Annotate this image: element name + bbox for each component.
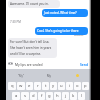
button[interactable]: For sure! But don't tell Lisa. She hasn'… [8, 38, 57, 58]
staticText: o [76, 83, 79, 89]
button[interactable]: q [8, 82, 16, 90]
button[interactable]: Cool. She's going to be there [35, 27, 88, 35]
button[interactable]: o [74, 82, 81, 90]
button[interactable]: l [78, 92, 85, 100]
button[interactable]: Just noted. What time? [42, 9, 88, 17]
button[interactable]: g [46, 92, 53, 100]
button[interactable]: e [26, 82, 33, 90]
button[interactable]: h [54, 92, 61, 100]
button[interactable]: k [70, 92, 77, 100]
staticText: g [48, 93, 51, 99]
button[interactable]: u [58, 82, 65, 90]
staticText: “My” [18, 74, 24, 78]
staticText: Cool. She's going to be there [37, 29, 79, 33]
button[interactable] [63, 69, 91, 82]
staticText: 7:30 PM [10, 20, 21, 24]
button[interactable]: My [35, 69, 63, 82]
staticText: l [81, 93, 83, 99]
button[interactable]: Send [79, 62, 90, 66]
button[interactable]: “My” [6, 69, 35, 82]
staticText: y [52, 83, 55, 89]
staticText: s [24, 93, 27, 99]
button[interactable]: f [38, 92, 45, 100]
staticText: u [60, 83, 63, 89]
staticText: i [69, 83, 71, 89]
staticText: r [37, 83, 39, 89]
staticText: j [65, 93, 67, 99]
staticText: d [32, 93, 35, 99]
staticText: w [19, 83, 23, 89]
staticText: Send [80, 62, 89, 66]
staticText: e [28, 83, 31, 89]
staticText: For sure! But don't tell Lisa. She hasn'… [10, 40, 55, 56]
staticText: Awesome. I'll count you in. [10, 2, 49, 6]
button[interactable]: r [34, 82, 41, 90]
button[interactable]: y [50, 82, 57, 90]
button[interactable]: Camera [8, 61, 13, 66]
staticText: a [15, 93, 18, 99]
staticText: t [45, 83, 47, 89]
button[interactable]: Awesome. I'll count you in. [8, 0, 60, 8]
button[interactable]: d [30, 92, 37, 100]
button[interactable]: a [12, 92, 20, 100]
staticText: My lips are sealed [15, 62, 43, 66]
button[interactable]: t [42, 82, 49, 90]
button[interactable]: j [62, 92, 69, 100]
staticText: Just noted. What time? [44, 11, 77, 15]
staticText: Delivered [74, 34, 84, 37]
staticText: q [11, 83, 14, 89]
staticText: k [72, 93, 75, 99]
staticText: My [47, 74, 51, 78]
staticText: f [41, 93, 43, 99]
button[interactable]: p [82, 82, 89, 90]
staticText: h [56, 93, 59, 99]
button[interactable]: s [21, 92, 29, 100]
button[interactable]: i [66, 82, 73, 90]
staticText: p [84, 83, 87, 89]
button[interactable]: w [17, 82, 25, 90]
